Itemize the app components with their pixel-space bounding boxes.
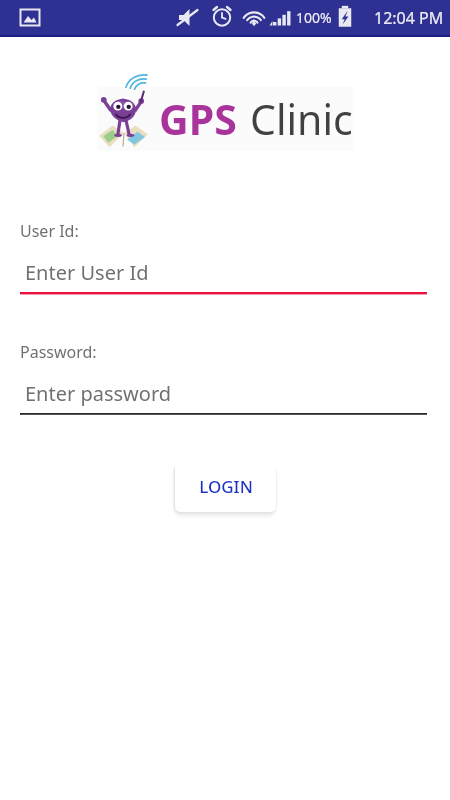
staticText: Enter User Id	[25, 259, 149, 286]
staticText: Enter password	[25, 380, 172, 407]
staticText: Clinic	[250, 91, 353, 147]
staticText: 12:04 PM	[374, 7, 444, 29]
staticText: LOGIN	[199, 475, 253, 498]
staticText: User Id:	[20, 220, 79, 242]
button[interactable]: Enter User Id	[20, 259, 427, 295]
button[interactable]: LOGIN	[175, 460, 276, 512]
staticText: Password:	[20, 341, 97, 363]
staticText: GPS	[159, 91, 237, 147]
button[interactable]: Enter password	[20, 380, 427, 416]
staticText: 100%	[296, 8, 332, 27]
